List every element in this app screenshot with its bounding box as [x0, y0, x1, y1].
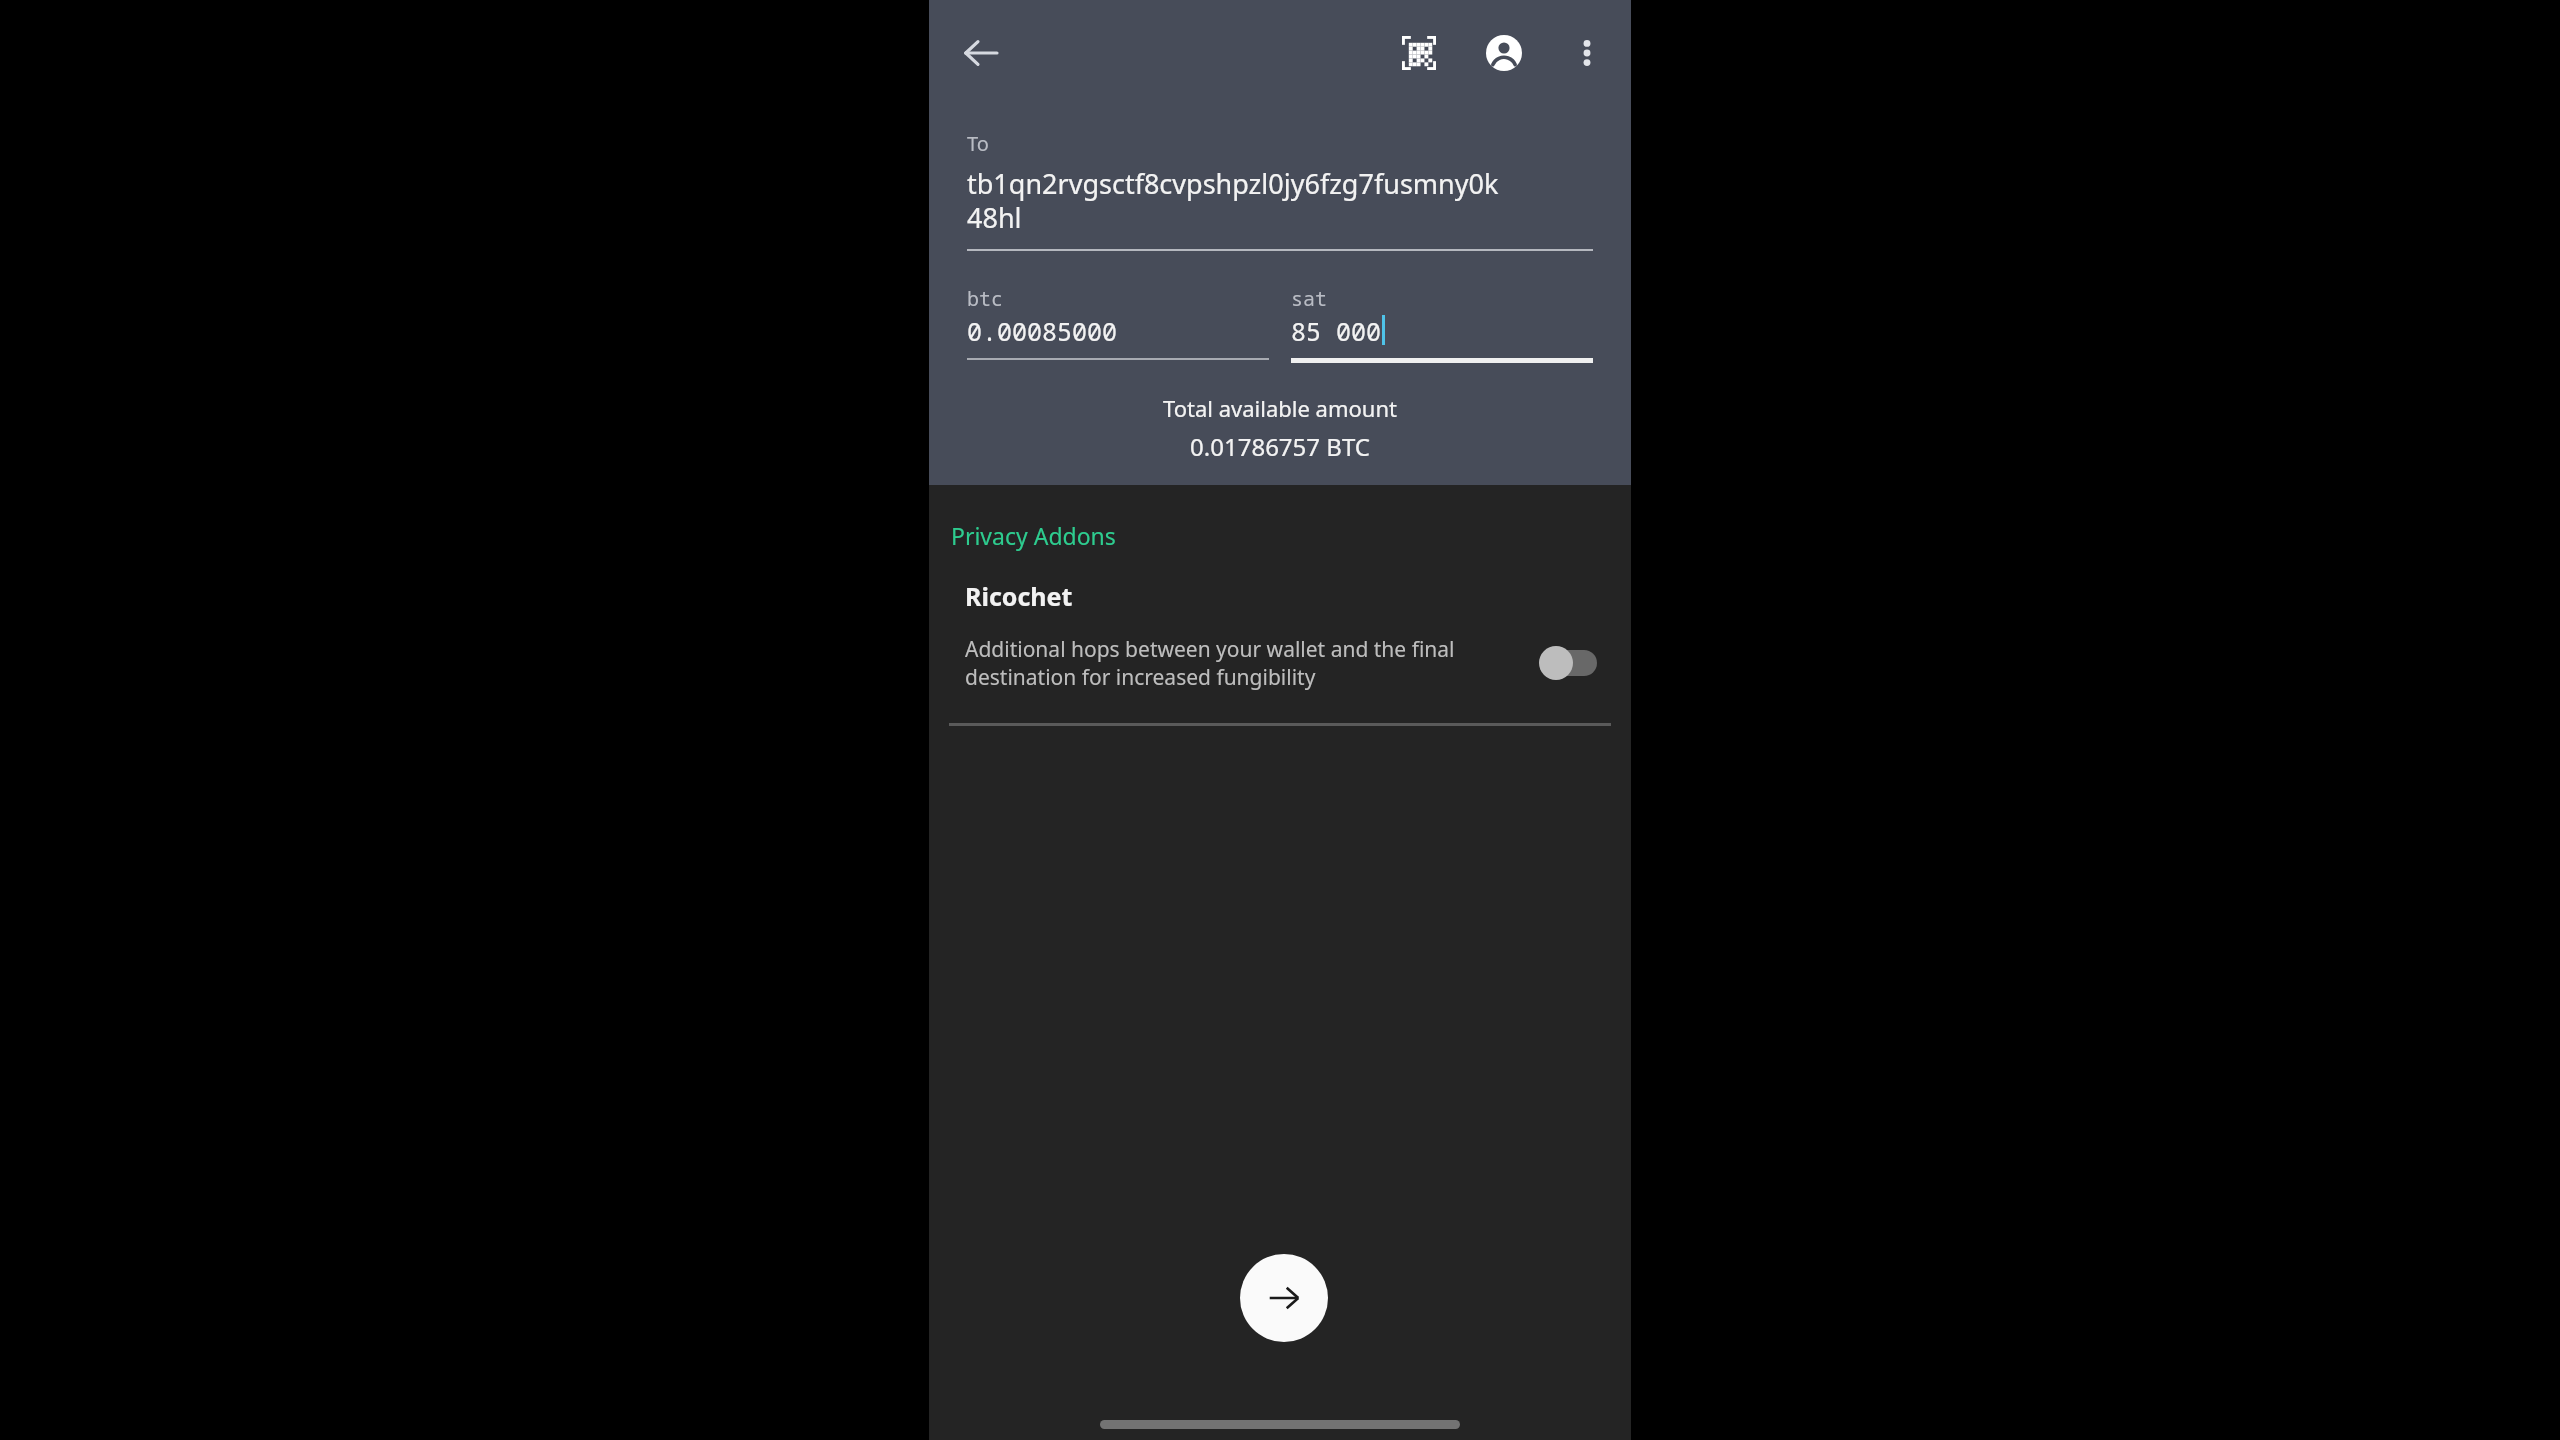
button[interactable]: Ricochet: [929, 579, 1631, 726]
staticText: tb1qn2rvgsctf8cvpshpzl0jy6fzg7fusmny0k 4…: [967, 165, 1499, 236]
staticText: Ricochet: [965, 579, 1073, 613]
button[interactable]: Back: [953, 25, 1009, 81]
staticText: Privacy Addons: [951, 520, 1116, 551]
staticText: 0.00085000: [967, 314, 1118, 348]
button[interactable]: btc: [967, 285, 1269, 360]
button[interactable]: Account: [1476, 25, 1532, 81]
staticText: btc: [967, 285, 1003, 312]
button[interactable]: Ricochet toggle: [1539, 641, 1601, 685]
staticText: 85 000: [1291, 314, 1382, 348]
button[interactable]: Scan QR code: [1391, 25, 1447, 81]
staticText: Total available amount: [967, 393, 1593, 423]
staticText: To: [967, 130, 989, 157]
button[interactable]: Send: [1240, 1254, 1328, 1342]
staticText: Additional hops between your wallet and …: [965, 635, 1523, 691]
button[interactable]: sat: [1291, 285, 1593, 363]
staticText: 0.01786757 BTC: [967, 430, 1593, 463]
staticText: sat: [1291, 285, 1327, 312]
button[interactable]: More options: [1559, 25, 1615, 81]
